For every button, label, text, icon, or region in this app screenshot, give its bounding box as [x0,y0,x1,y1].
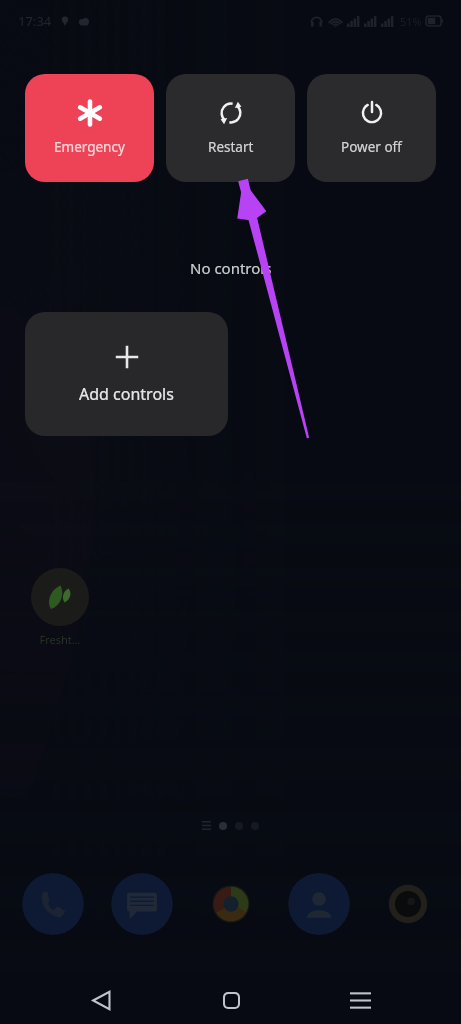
staticText: 51% [400,14,422,29]
staticText: 17:34 [18,12,52,30]
button[interactable]: Emergency [25,74,154,182]
button[interactable]: Add controls [25,312,228,436]
button[interactable]: Messages [111,873,173,935]
staticText: No controls [190,258,272,278]
staticText: Power off [341,138,402,156]
button[interactable]: Back [73,976,129,1024]
staticText: Restart [208,138,254,156]
staticText: Emergency [54,138,125,156]
button[interactable] [31,568,89,626]
button[interactable]: Contacts [288,873,350,935]
button[interactable]: Chrome [200,873,262,935]
button[interactable]: Restart [166,74,295,182]
staticText: Fresht... [39,632,81,647]
button[interactable]: Home [203,976,259,1024]
button[interactable]: Power off [307,74,436,182]
button[interactable]: Camera [377,873,439,935]
staticText: Add controls [79,383,174,405]
button[interactable]: Phone [22,873,84,935]
button[interactable]: Recents [332,976,388,1024]
